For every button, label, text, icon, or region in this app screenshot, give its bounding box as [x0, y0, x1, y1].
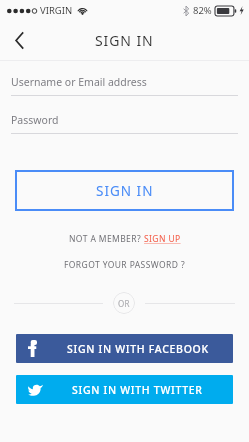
- staticText: SIGN UP: [144, 233, 181, 245]
- staticText: 82%: [193, 4, 212, 17]
- button[interactable]: Username or Email address: [11, 75, 238, 96]
- staticText: Password: [11, 113, 59, 127]
- button[interactable]: SIGN IN WITH FACEBOOK: [16, 334, 233, 363]
- button[interactable]: Password: [11, 113, 238, 134]
- staticText: NOT A MEMBER?: [69, 233, 144, 245]
- button[interactable]: Back: [0, 20, 38, 61]
- staticText: OR: [118, 298, 130, 309]
- staticText: SIGN IN: [95, 31, 154, 50]
- button[interactable]: SIGN IN: [15, 170, 234, 211]
- staticText: SIGN IN: [96, 182, 154, 200]
- staticText: VIRGIN: [40, 4, 73, 17]
- staticText: FORGOT YOUR PASSWORD ?: [64, 259, 185, 271]
- button[interactable]: SIGN UP: [144, 233, 181, 245]
- button[interactable]: SIGN IN WITH TWITTER: [16, 375, 233, 404]
- staticText: SIGN IN WITH FACEBOOK: [67, 342, 209, 356]
- button[interactable]: FORGOT YOUR PASSWORD ?: [64, 259, 185, 271]
- staticText: Username or Email address: [11, 75, 147, 89]
- staticText: SIGN IN WITH TWITTER: [72, 383, 203, 397]
